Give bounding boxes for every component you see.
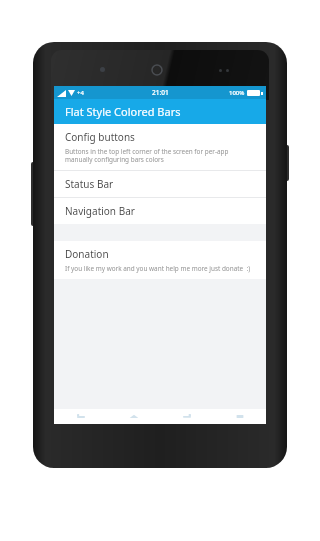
- button[interactable]: Navigation Bar: [54, 198, 266, 224]
- staticText: 100%: [229, 89, 245, 97]
- staticText: Flat Style Colored Bars: [65, 104, 181, 119]
- staticText: 21:01: [152, 88, 169, 97]
- staticText: If you like my work and you want help me…: [65, 264, 251, 273]
- staticText: Navigation Bar: [65, 204, 135, 218]
- staticText: Config buttons: [65, 130, 135, 144]
- button[interactable]: Home: [107, 409, 160, 424]
- button[interactable]: Back: [54, 409, 107, 424]
- button[interactable]: Overview: [213, 409, 266, 424]
- staticText: Status Bar: [65, 177, 114, 191]
- staticText: +4: [77, 89, 84, 97]
- staticText: Buttons in the top left corner of the sc…: [65, 147, 229, 164]
- button[interactable]: Status Bar: [54, 171, 266, 197]
- button[interactable]: Donation: [54, 241, 266, 279]
- button[interactable]: Recent apps: [160, 409, 213, 424]
- staticText: Donation: [65, 247, 109, 261]
- button[interactable]: Config buttons: [54, 124, 266, 170]
